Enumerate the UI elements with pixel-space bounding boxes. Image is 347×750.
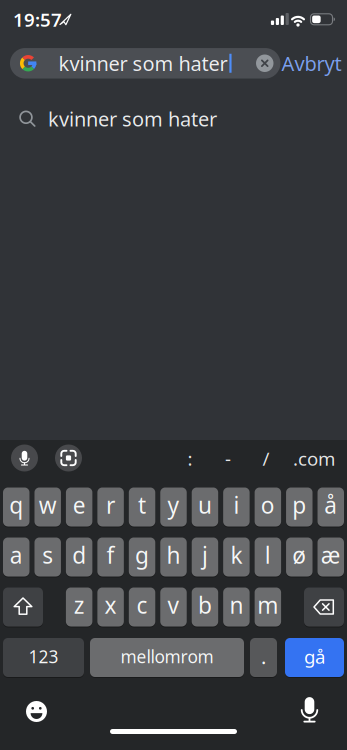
button[interactable]: Dictation — [293, 694, 325, 726]
staticText: e — [73, 490, 86, 520]
staticText: : — [187, 446, 192, 471]
button[interactable]: Numbers — [3, 638, 84, 678]
staticText: o — [261, 490, 275, 520]
button[interactable]: b — [192, 587, 218, 627]
button[interactable]: e — [66, 487, 92, 527]
button[interactable]: Delete — [304, 587, 344, 627]
staticText: h — [166, 540, 180, 570]
button[interactable]: Period — [250, 638, 277, 678]
button[interactable]: i — [223, 487, 250, 527]
staticText: y — [167, 490, 179, 520]
button[interactable]: a — [3, 537, 29, 577]
button[interactable]: o — [255, 487, 281, 527]
staticText: l — [265, 540, 271, 570]
button[interactable]: x — [97, 587, 124, 627]
staticText: - — [225, 446, 231, 471]
button[interactable]: u — [192, 487, 218, 527]
button[interactable]: j — [192, 537, 218, 577]
button[interactable]: t — [129, 487, 155, 527]
staticText: d — [72, 540, 86, 570]
staticText: i — [233, 490, 239, 520]
button[interactable]: z — [66, 587, 92, 627]
button[interactable]: h — [160, 537, 187, 577]
button[interactable]: ø — [286, 537, 313, 577]
button[interactable]: m — [255, 587, 281, 627]
button[interactable]: kvinner som hater — [0, 95, 347, 141]
button[interactable]: s — [34, 537, 61, 577]
staticText: kvinner som hater — [48, 105, 217, 132]
button[interactable]: k — [223, 537, 250, 577]
staticText: s — [42, 540, 53, 570]
staticText: x — [105, 590, 117, 620]
button[interactable]: Emoji — [25, 700, 47, 722]
button[interactable]: Shift — [3, 587, 43, 627]
staticText: n — [229, 590, 243, 620]
staticText: t — [138, 490, 146, 520]
staticText: m — [257, 590, 278, 620]
button[interactable]: p — [286, 487, 313, 527]
staticText: q — [9, 490, 23, 520]
staticText: j — [202, 540, 208, 570]
button[interactable]: Voice search — [11, 444, 38, 471]
staticText: mellomrom — [120, 645, 213, 668]
staticText: . — [261, 643, 266, 670]
button[interactable]: l — [255, 537, 281, 577]
staticText: b — [198, 590, 212, 620]
button[interactable]: mellomrom — [90, 638, 244, 678]
staticText: z — [74, 590, 85, 620]
button[interactable]: y — [160, 487, 187, 527]
staticText: g — [135, 540, 149, 570]
button[interactable]: Search field — [10, 48, 280, 78]
button[interactable]: æ — [317, 537, 344, 577]
button[interactable]: Avbryt — [281, 50, 341, 77]
staticText: w — [39, 490, 57, 520]
button[interactable]: q — [3, 487, 29, 527]
button[interactable]: Google Lens — [55, 444, 82, 471]
staticText: v — [167, 590, 179, 620]
button[interactable]: Dash — [216, 444, 240, 472]
staticText: r — [106, 490, 115, 520]
button[interactable]: f — [97, 537, 124, 577]
staticText: 123 — [28, 645, 58, 668]
button[interactable]: gå — [285, 638, 344, 678]
staticText: Avbryt — [281, 50, 341, 77]
staticText: c — [137, 590, 148, 620]
button[interactable]: n — [223, 587, 250, 627]
button[interactable]: g — [129, 537, 155, 577]
staticText: .com — [293, 446, 335, 471]
staticText: p — [292, 490, 306, 520]
button[interactable]: Clear text — [256, 54, 273, 72]
button[interactable]: d — [66, 537, 92, 577]
staticText: / — [262, 446, 269, 471]
staticText: f — [107, 540, 115, 570]
staticText: ø — [292, 540, 306, 570]
staticText: a — [10, 540, 23, 570]
button[interactable]: Slash — [254, 444, 278, 472]
staticText: å — [324, 490, 337, 520]
button[interactable]: Colon — [178, 444, 202, 472]
button[interactable]: w — [34, 487, 61, 527]
staticText: æ — [321, 540, 341, 570]
staticText: u — [198, 490, 212, 520]
button[interactable]: Dot com — [288, 444, 340, 472]
staticText: 19:57 — [13, 7, 62, 32]
staticText: gå — [304, 644, 325, 669]
button[interactable]: v — [160, 587, 187, 627]
staticText: k — [230, 540, 242, 570]
staticText: kvinner som hater — [58, 50, 227, 77]
button[interactable]: r — [97, 487, 124, 527]
button[interactable]: c — [129, 587, 155, 627]
button[interactable]: å — [317, 487, 344, 527]
